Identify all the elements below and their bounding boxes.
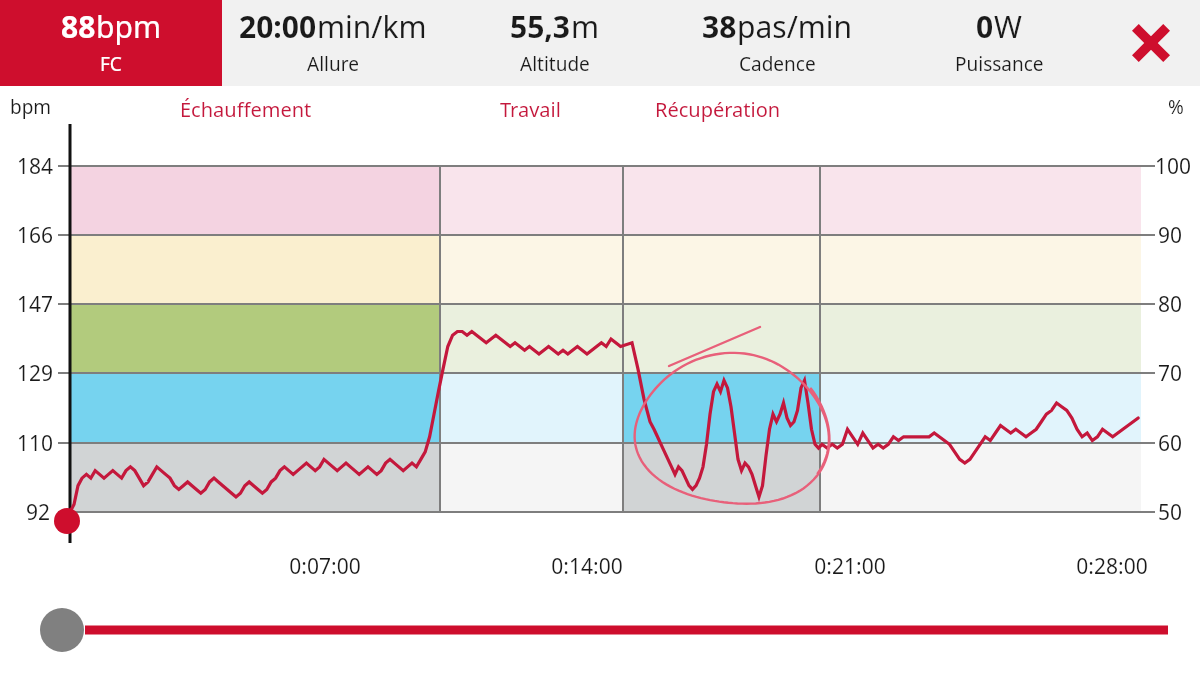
staticText: bpm bbox=[10, 94, 52, 120]
staticText: Échauffement bbox=[180, 96, 312, 123]
button[interactable]: 20:00 bbox=[222, 0, 444, 86]
staticText: pas/min bbox=[737, 6, 853, 47]
button[interactable]: 0 bbox=[888, 0, 1110, 86]
staticText: 90 bbox=[1158, 221, 1183, 250]
staticText: 0:14:00 bbox=[527, 552, 647, 581]
staticText: Travail bbox=[500, 96, 561, 123]
staticText: bpm bbox=[96, 6, 161, 47]
staticText: Allure bbox=[307, 51, 359, 77]
button[interactable]: 55,3 bbox=[444, 0, 666, 86]
button[interactable]: 38 bbox=[666, 0, 888, 86]
staticText: 110 bbox=[17, 429, 54, 458]
staticText: 100 bbox=[1155, 152, 1192, 181]
staticText: 0:07:00 bbox=[265, 552, 385, 581]
staticText: 88 bbox=[61, 6, 96, 47]
staticText: 129 bbox=[17, 359, 54, 388]
staticText: % bbox=[1168, 94, 1184, 120]
staticText: W bbox=[994, 6, 1022, 47]
staticText: Altitude bbox=[520, 51, 590, 77]
staticText: 38 bbox=[702, 6, 737, 47]
staticText: m bbox=[571, 6, 600, 47]
staticText: min/km bbox=[317, 6, 427, 47]
staticText: 166 bbox=[17, 221, 54, 250]
staticText: 55,3 bbox=[510, 6, 571, 47]
staticText: 80 bbox=[1158, 290, 1183, 319]
staticText: 20:00 bbox=[239, 6, 317, 47]
staticText: Puissance bbox=[955, 51, 1044, 77]
staticText: 60 bbox=[1158, 429, 1183, 458]
staticText: 0:28:00 bbox=[1052, 552, 1172, 581]
button[interactable]: Fermer bbox=[1122, 14, 1180, 72]
staticText: 70 bbox=[1158, 359, 1183, 388]
staticText: 0:21:00 bbox=[790, 552, 910, 581]
staticText: Récupération bbox=[655, 96, 781, 123]
staticText: FC bbox=[100, 51, 122, 77]
button[interactable]: 88 bbox=[0, 0, 222, 86]
staticText: 0 bbox=[976, 6, 994, 47]
staticText: 184 bbox=[17, 152, 54, 181]
button[interactable]: Position de lecture bbox=[26, 594, 1176, 666]
staticText: 50 bbox=[1158, 498, 1183, 527]
staticText: 92 bbox=[26, 498, 51, 527]
staticText: Cadence bbox=[739, 51, 816, 77]
staticText: 147 bbox=[17, 290, 54, 319]
